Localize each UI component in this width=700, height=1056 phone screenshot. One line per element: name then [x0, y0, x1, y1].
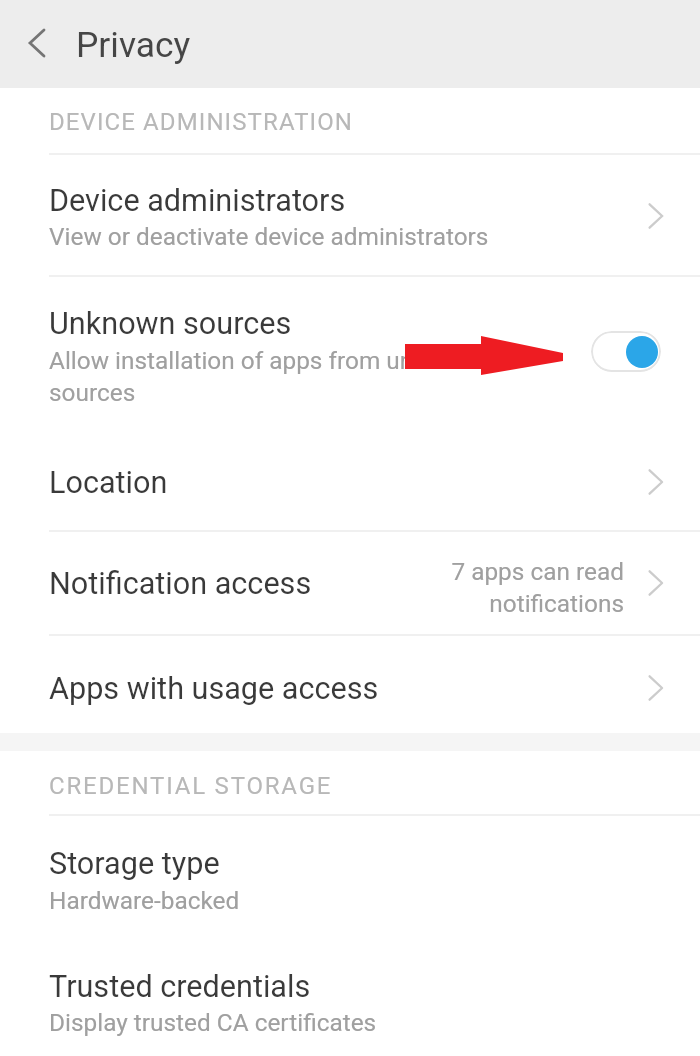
staticText: Apps with usage access [49, 671, 379, 707]
button[interactable]: Unknown sources, on [591, 331, 661, 372]
staticText: Device administrators [49, 183, 346, 219]
staticText: Trusted credentials [49, 969, 311, 1005]
staticText: Privacy [76, 24, 191, 65]
staticText: Display trusted CA certificates [49, 1008, 377, 1037]
staticText: DEVICE ADMINISTRATION [49, 108, 354, 136]
staticText: Unknown sources [49, 306, 292, 342]
staticText: sources [49, 378, 136, 407]
staticText: Storage type [49, 846, 220, 882]
button[interactable]: Storage type [0, 814, 700, 935]
button[interactable]: Device administrators [0, 153, 700, 275]
staticText: Allow installation of apps from unknown [49, 346, 485, 375]
button[interactable]: Navigate up [13, 19, 61, 67]
button[interactable]: Notification access [0, 530, 700, 634]
button[interactable]: Trusted credentials [0, 935, 700, 1056]
staticText: Notification access [49, 566, 312, 602]
staticText: CREDENTIAL STORAGE [49, 772, 333, 800]
staticText: View or deactivate device administrators [49, 222, 489, 251]
staticText: 7 apps can read [451, 557, 624, 586]
button[interactable]: Unknown sources [0, 275, 700, 425]
button[interactable]: Location [0, 425, 700, 530]
button[interactable]: Apps with usage access [0, 634, 700, 733]
staticText: notifications [489, 589, 624, 618]
staticText: Location [49, 465, 168, 501]
staticText: Hardware-backed [49, 886, 240, 915]
